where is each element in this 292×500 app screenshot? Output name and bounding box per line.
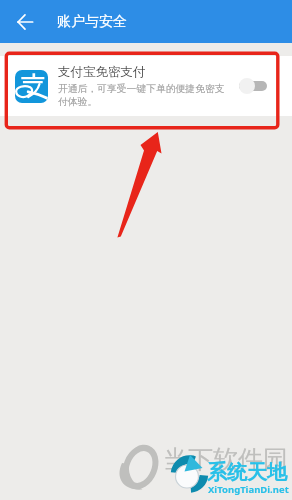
staticText: XiTongTianDi.net	[208, 483, 289, 496]
staticText: 系统天地	[207, 460, 287, 485]
staticText: 当下软件园	[163, 444, 288, 475]
button[interactable]: Toggle Alipay password-free payment	[239, 78, 267, 94]
button[interactable]: Back	[9, 6, 40, 37]
staticText: 开通后，可享受一键下单的便捷免密支付体验。	[58, 83, 230, 108]
staticText: 账户与安全	[57, 13, 127, 31]
staticText: 支付宝免密支付	[58, 64, 146, 80]
button[interactable]: 支付宝免密支付	[0, 56, 292, 116]
